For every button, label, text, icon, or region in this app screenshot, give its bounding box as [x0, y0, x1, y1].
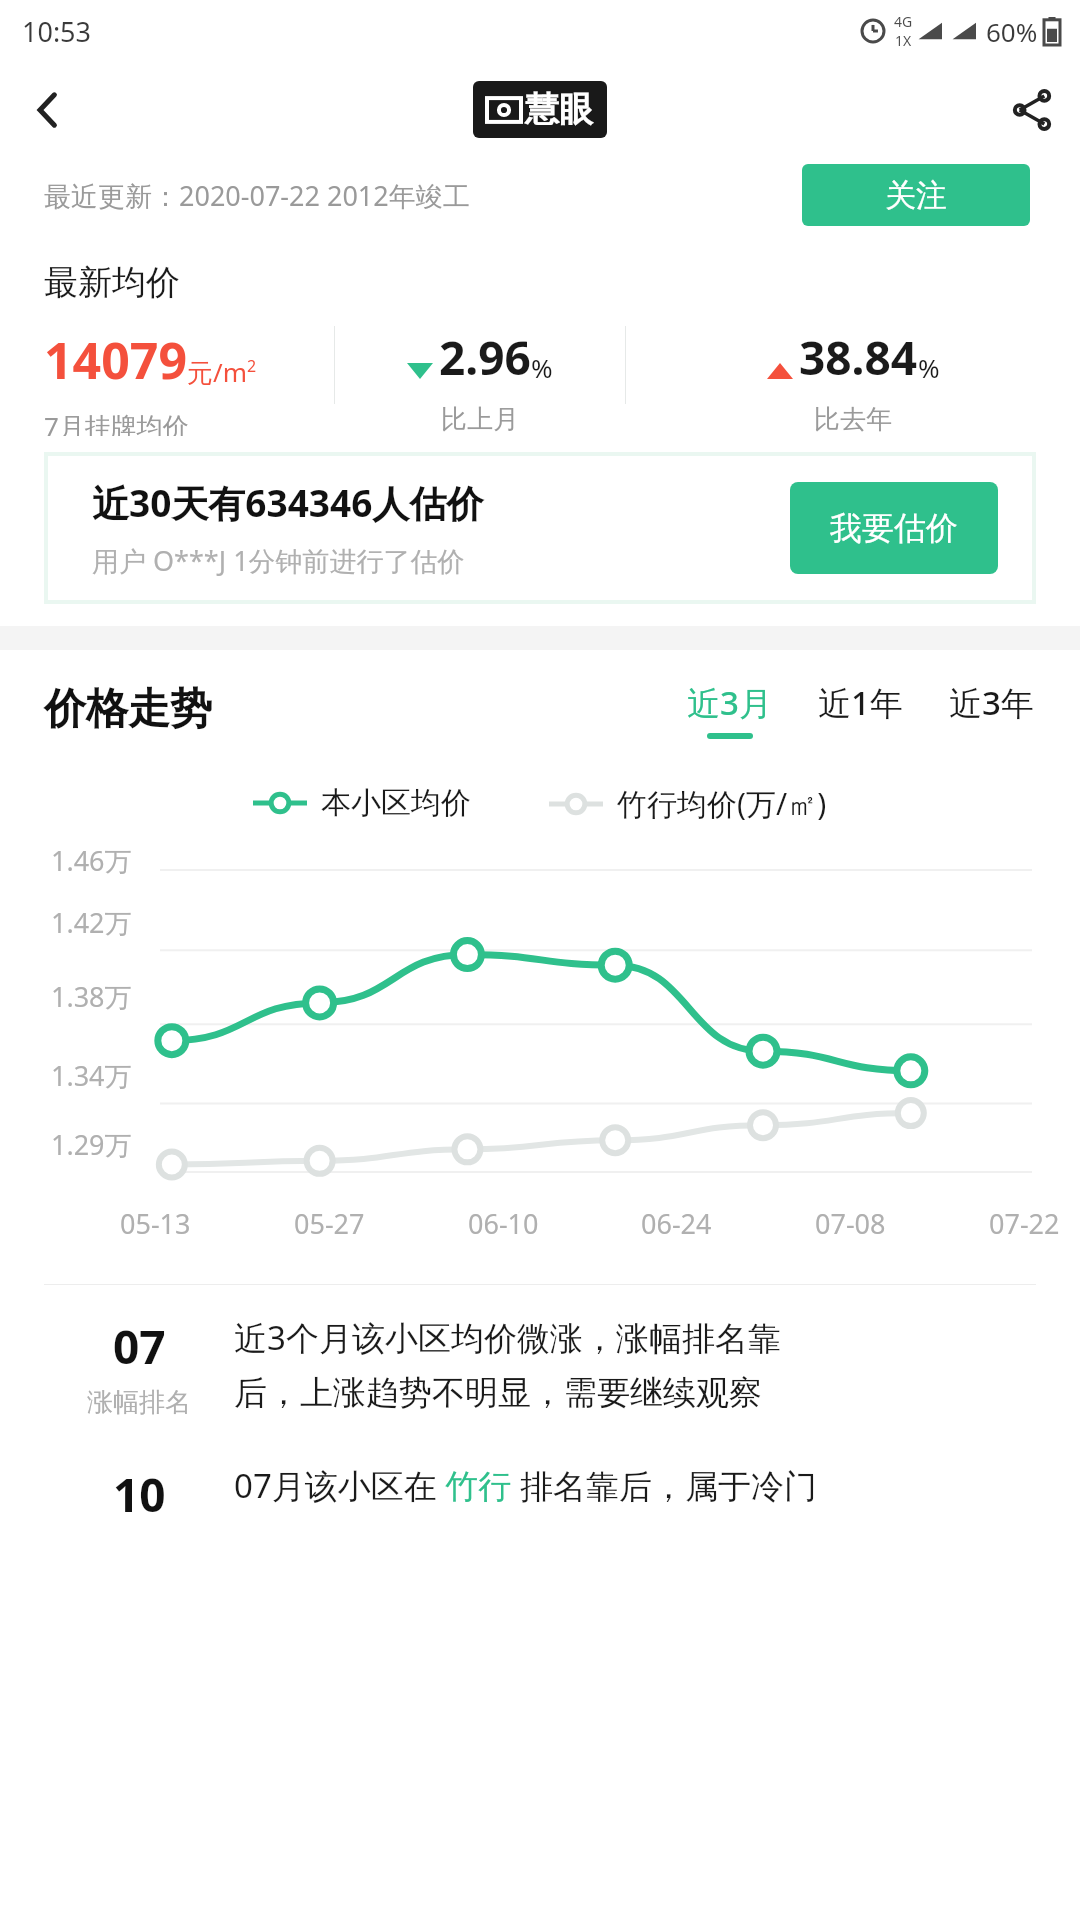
button[interactable]: 关注 [802, 164, 1030, 226]
staticText: 4G [894, 12, 913, 31]
staticText: 我要估价 [830, 508, 958, 548]
staticText: 06-10 [468, 1205, 539, 1242]
button[interactable]: 10 [44, 1463, 1036, 1526]
button[interactable]: 近3月 [685, 676, 774, 743]
staticText: 05-13 [120, 1205, 191, 1242]
staticText: % [531, 350, 553, 385]
button[interactable]: 近30天有634346人估价 [48, 456, 1032, 600]
staticText: 最近更新：2020-07-22 2012年竣工 [44, 177, 470, 214]
staticText: 1.42万 [51, 904, 132, 941]
staticText: 10:53 [22, 13, 92, 50]
staticText: 近3年 [949, 680, 1034, 725]
button[interactable]: 近3年 [947, 676, 1036, 743]
button[interactable]: 近1年 [816, 676, 905, 743]
staticText: 07-22 [989, 1205, 1060, 1242]
staticText: 07-08 [815, 1205, 886, 1242]
staticText: 1.46万 [51, 842, 132, 879]
staticText: 14079 [44, 326, 187, 394]
staticText: 10 [113, 1463, 166, 1526]
staticText: 07月该小区在 竹行 排名靠后，属于冷门 [234, 1463, 817, 1508]
staticText: 竹行均价(万/㎡) [617, 783, 827, 824]
staticText: 最新均价 [44, 261, 180, 304]
staticText: 比上月 [441, 403, 519, 436]
staticText: 近3个月该小区均价微涨，涨幅排名靠 [234, 1315, 781, 1360]
staticText: 本小区均价 [321, 784, 471, 822]
staticText: 60% [986, 14, 1038, 49]
staticText: 价格走势 [44, 683, 212, 736]
button[interactable]: 07 [44, 1315, 1036, 1419]
staticText: 1.34万 [51, 1057, 132, 1094]
staticText: 05-27 [294, 1205, 365, 1242]
staticText: 1.29万 [51, 1126, 132, 1163]
staticText: 后，上涨趋势不明显，需要继续观察 [234, 1372, 762, 1414]
staticText: 38.84 [799, 326, 918, 389]
button[interactable]: 我要估价 [790, 482, 998, 574]
staticText: 用户 O***J 1分钟前进行了估价 [92, 542, 465, 579]
button[interactable]: Back [0, 62, 96, 157]
button[interactable]: Share [984, 62, 1080, 157]
staticText: 慧眼 [525, 88, 593, 131]
staticText: 1.38万 [51, 978, 132, 1015]
staticText: 近1年 [818, 680, 903, 725]
staticText: 2.96 [439, 326, 531, 389]
staticText: 7月挂牌均价 [44, 408, 189, 436]
staticText: 关注 [885, 176, 947, 215]
staticText: 近3月 [687, 680, 772, 725]
staticText: 06-24 [641, 1205, 712, 1242]
staticText: 比去年 [814, 403, 892, 436]
staticText: 元/m2 [187, 354, 257, 390]
staticText: % [918, 350, 940, 385]
staticText: 1X [895, 31, 912, 50]
staticText: 近30天有634346人估价 [92, 477, 484, 528]
staticText: 07 [113, 1315, 166, 1378]
staticText: 涨幅排名 [87, 1386, 191, 1419]
